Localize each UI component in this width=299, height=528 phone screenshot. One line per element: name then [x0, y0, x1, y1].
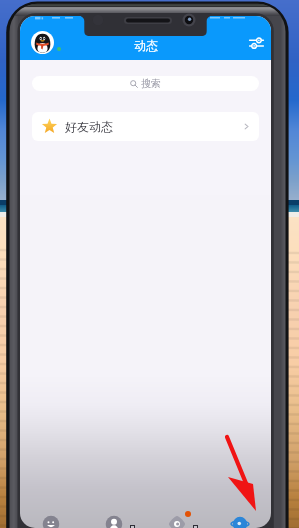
- button[interactable]: 好友动态: [32, 112, 259, 141]
- button[interactable]: Messages: [20, 486, 82, 528]
- button[interactable]: Contacts: [82, 486, 145, 528]
- button[interactable]: Moments: [208, 486, 271, 528]
- staticText: 好友动态: [65, 119, 113, 134]
- button[interactable]: Profile: [31, 31, 54, 54]
- staticText: 搜索: [141, 77, 161, 90]
- button[interactable]: Discover: [145, 486, 208, 528]
- button[interactable]: 搜索: [32, 76, 259, 91]
- button[interactable]: Settings: [249, 37, 264, 49]
- staticText: 动态: [134, 38, 158, 53]
